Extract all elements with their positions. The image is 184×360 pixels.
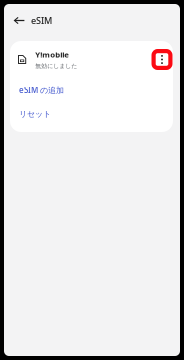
staticText: Y!mobile [35, 49, 69, 60]
staticText: eSIM [31, 14, 52, 27]
staticText: リセット [19, 109, 51, 119]
button[interactable]: More options [155, 52, 169, 66]
button[interactable]: eSIM の追加 [10, 78, 173, 102]
staticText: 無効にしました [35, 62, 77, 70]
button[interactable]: リセット [10, 102, 173, 126]
staticText: eSIM の追加 [19, 84, 64, 95]
button[interactable]: Back [8, 9, 30, 31]
